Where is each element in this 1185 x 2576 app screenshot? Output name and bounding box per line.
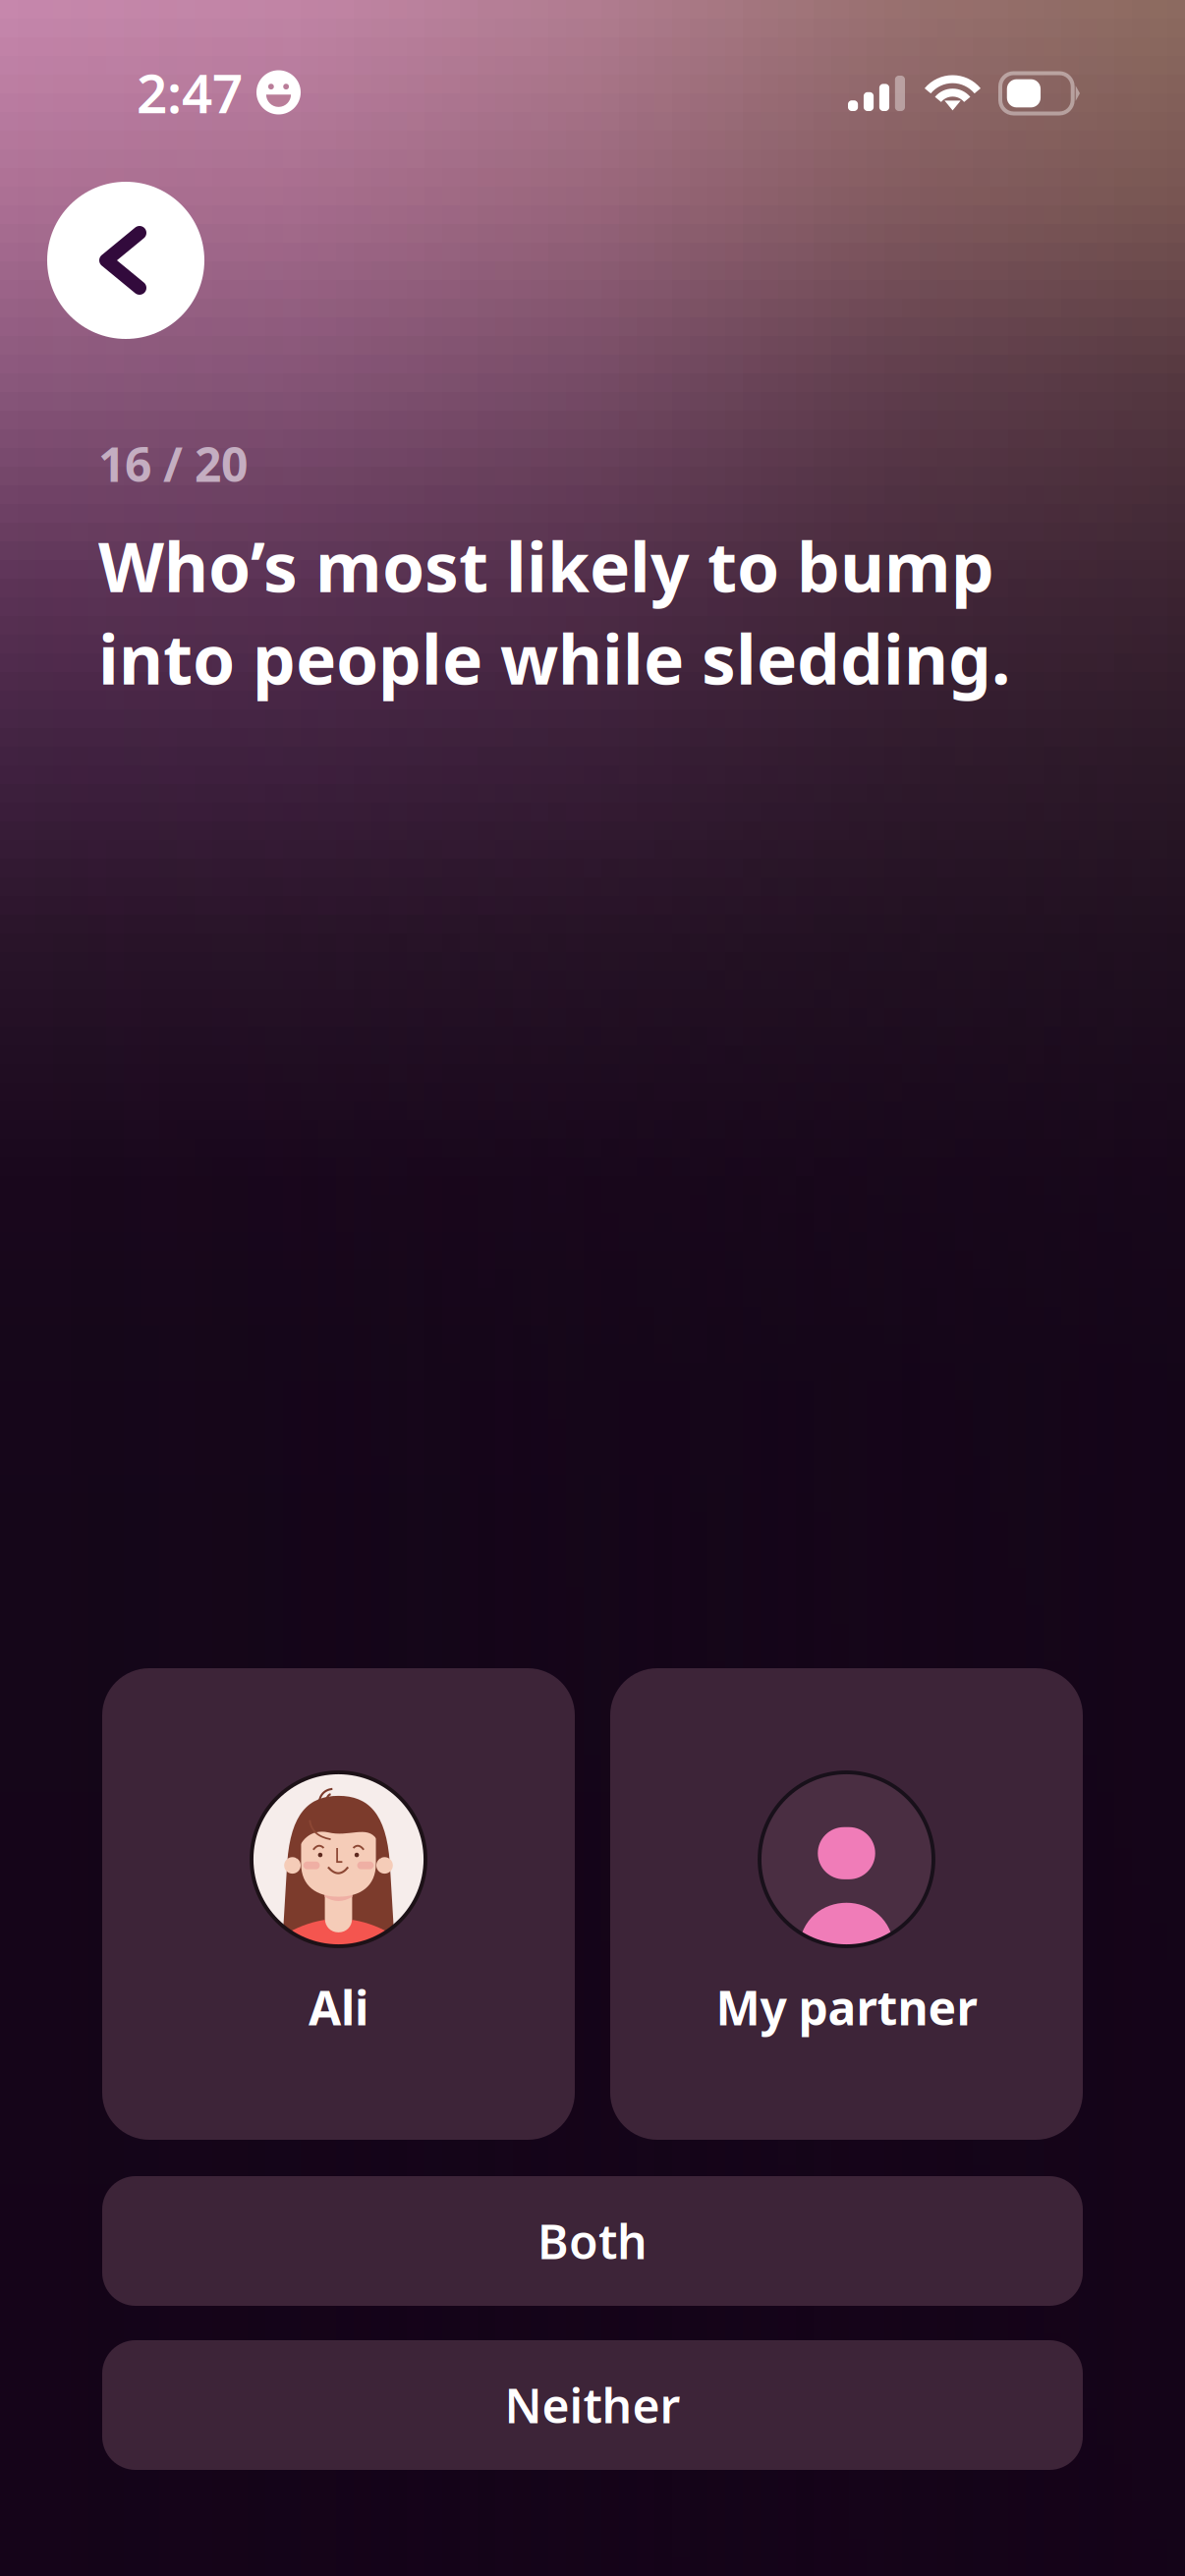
button[interactable]: Ali bbox=[102, 1668, 575, 2140]
button[interactable]: Back bbox=[47, 182, 204, 339]
staticText: Both bbox=[537, 2210, 648, 2272]
button[interactable]: My partner bbox=[610, 1668, 1083, 2140]
staticText: Ali bbox=[309, 1976, 368, 2038]
staticText: Neither bbox=[505, 2374, 680, 2436]
staticText: My partner bbox=[716, 1976, 977, 2038]
staticText: Who’s most likely to bump into people wh… bbox=[98, 520, 1010, 703]
button[interactable]: Both bbox=[102, 2176, 1083, 2306]
staticText: 2:47 bbox=[137, 57, 243, 128]
staticText: 16 / 20 bbox=[98, 432, 248, 495]
button[interactable]: Neither bbox=[102, 2340, 1083, 2470]
